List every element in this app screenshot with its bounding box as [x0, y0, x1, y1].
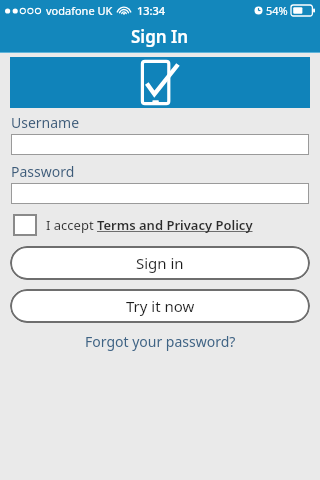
button[interactable]	[11, 183, 309, 204]
staticText: 13:34	[137, 3, 166, 18]
staticText: Username	[11, 113, 80, 132]
other: Accept terms checkbox	[13, 214, 37, 236]
staticText: 54%	[266, 3, 288, 18]
staticText: vodafone UK	[46, 3, 113, 18]
staticText: I accept	[46, 216, 97, 234]
button[interactable]: Forgot your password?	[85, 332, 236, 351]
staticText: Sign In	[131, 25, 189, 48]
button[interactable]: Try it now	[10, 289, 310, 323]
staticText: Sign in	[136, 253, 184, 273]
button[interactable]: Accept terms checkbox	[13, 214, 253, 236]
button[interactable]	[11, 134, 309, 155]
staticText: Password	[11, 162, 75, 181]
button[interactable]: Sign in	[10, 246, 310, 280]
staticText: Try it now	[126, 296, 195, 316]
button[interactable]: Terms and Privacy Policy	[97, 216, 253, 234]
